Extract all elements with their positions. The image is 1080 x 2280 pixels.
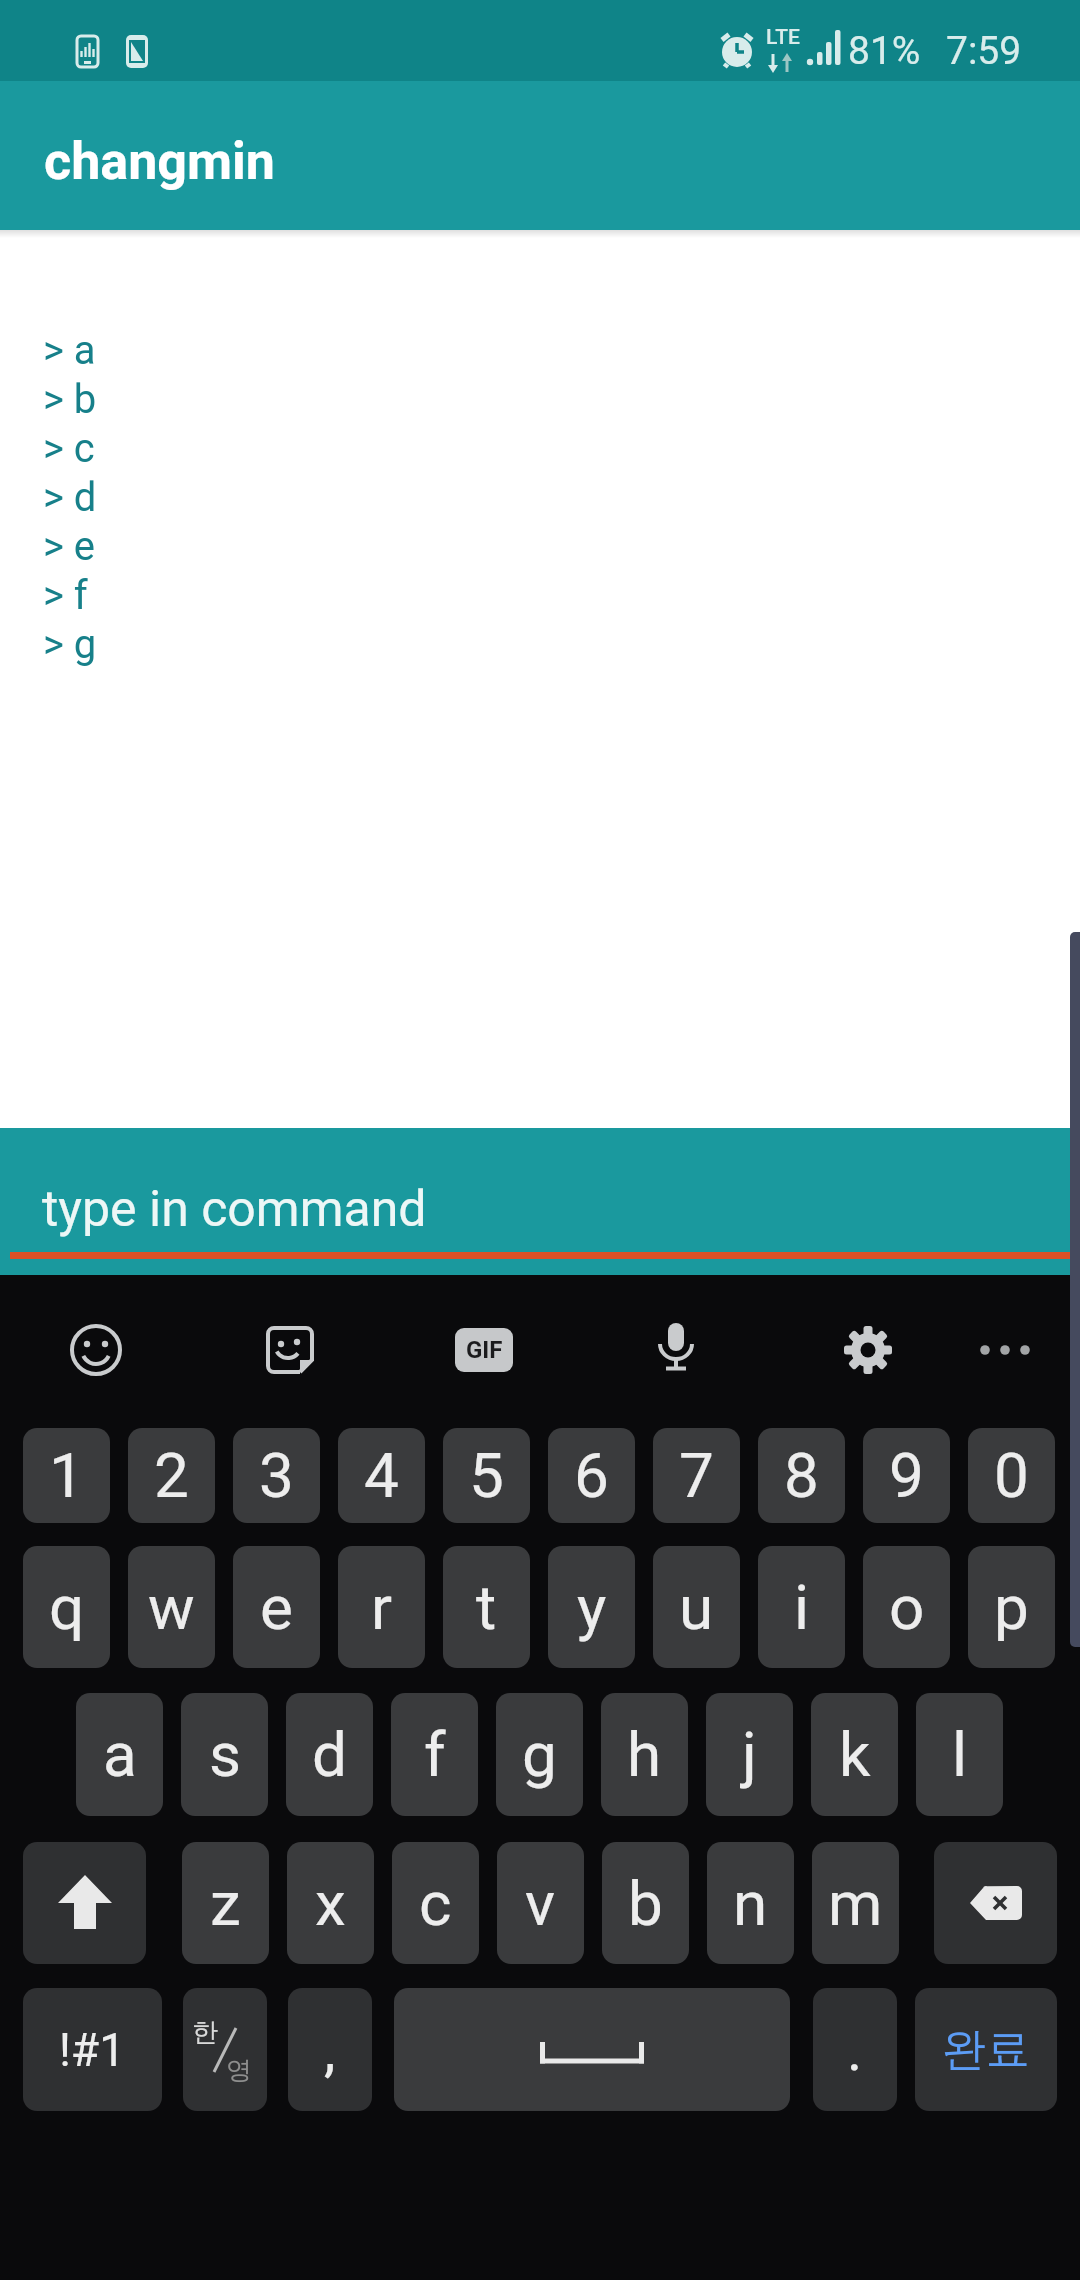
staticText: i xyxy=(794,1571,810,1644)
button[interactable] xyxy=(394,1988,790,2111)
staticText: 한 xyxy=(192,2016,218,2049)
staticText: 7 xyxy=(679,1439,714,1512)
button[interactable]: w xyxy=(128,1546,215,1668)
staticText: GIF xyxy=(466,1336,503,1364)
staticText: m xyxy=(828,1867,883,1940)
button[interactable]: m xyxy=(812,1842,899,1964)
button[interactable]: i xyxy=(758,1546,845,1668)
button[interactable]: 3 xyxy=(233,1428,320,1523)
staticText: h xyxy=(627,1718,662,1791)
staticText: w xyxy=(148,1571,195,1644)
staticText: 1 xyxy=(49,1439,84,1512)
button[interactable]: 5 xyxy=(443,1428,530,1523)
staticText: u xyxy=(679,1571,714,1644)
button[interactable]: e xyxy=(233,1546,320,1668)
staticText: 4 xyxy=(364,1439,399,1512)
button[interactable] xyxy=(70,1324,122,1376)
button[interactable]: 한 xyxy=(183,1988,267,2111)
staticText: changmin xyxy=(44,131,275,192)
button[interactable]: v xyxy=(497,1842,584,1964)
button[interactable]: 8 xyxy=(758,1428,845,1523)
button[interactable]: a xyxy=(76,1693,163,1816)
button[interactable] xyxy=(650,1321,702,1379)
staticText: n xyxy=(733,1867,768,1940)
staticText: s xyxy=(209,1718,241,1791)
button[interactable]: 2 xyxy=(128,1428,215,1523)
staticText: !#1 xyxy=(59,2023,126,2077)
button[interactable]: 4 xyxy=(338,1428,425,1523)
staticText: p xyxy=(994,1571,1029,1644)
button[interactable] xyxy=(264,1324,316,1376)
staticText: 2 xyxy=(154,1439,189,1512)
staticText: e xyxy=(260,1571,293,1644)
button[interactable]: r xyxy=(338,1546,425,1668)
button[interactable]: s xyxy=(181,1693,268,1816)
staticText: y xyxy=(577,1571,607,1644)
button[interactable]: n xyxy=(707,1842,794,1964)
staticText: d xyxy=(312,1718,347,1791)
staticText: t xyxy=(476,1571,497,1644)
button[interactable]: type in command xyxy=(0,1128,1080,1275)
staticText: o xyxy=(889,1571,925,1644)
button[interactable]: k xyxy=(811,1693,898,1816)
button[interactable]: f xyxy=(391,1693,478,1816)
staticText: 7:59 xyxy=(946,28,1022,74)
button[interactable]: . xyxy=(813,1988,897,2111)
staticText: . xyxy=(847,2016,863,2084)
staticText: q xyxy=(49,1571,85,1644)
button[interactable]: g xyxy=(496,1693,583,1816)
staticText: 5 xyxy=(469,1439,504,1512)
staticText: v xyxy=(525,1867,556,1940)
staticText: l xyxy=(952,1718,968,1791)
button[interactable]: l xyxy=(916,1693,1003,1816)
button[interactable]: c xyxy=(392,1842,479,1964)
staticText: , xyxy=(324,2016,336,2084)
button[interactable]: z xyxy=(182,1842,269,1964)
button[interactable]: 7 xyxy=(653,1428,740,1523)
button[interactable]: x xyxy=(287,1842,374,1964)
staticText: z xyxy=(210,1867,241,1940)
button[interactable]: 1 xyxy=(23,1428,110,1523)
button[interactable]: 9 xyxy=(863,1428,950,1523)
button[interactable]: j xyxy=(706,1693,793,1816)
staticText: 6 xyxy=(574,1439,609,1512)
button[interactable]: b xyxy=(602,1842,689,1964)
staticText: 0 xyxy=(994,1439,1029,1512)
staticText: r xyxy=(371,1571,393,1644)
button[interactable]: GIF xyxy=(455,1328,513,1372)
staticText: x xyxy=(315,1867,346,1940)
button[interactable] xyxy=(842,1324,894,1376)
staticText: c xyxy=(419,1867,452,1940)
button[interactable]: !#1 xyxy=(23,1988,162,2111)
staticText: > a > b > c > d > e > f > g xyxy=(43,327,97,668)
staticText: 9 xyxy=(889,1439,924,1512)
staticText: 영 xyxy=(226,2054,252,2087)
button[interactable]: u xyxy=(653,1546,740,1668)
button[interactable]: y xyxy=(548,1546,635,1668)
staticText: g xyxy=(522,1718,557,1791)
staticText: type in command xyxy=(42,1180,427,1239)
staticText: a xyxy=(103,1718,137,1791)
button[interactable] xyxy=(23,1842,146,1964)
staticText: k xyxy=(839,1718,871,1791)
button[interactable]: , xyxy=(288,1988,372,2111)
staticText: 3 xyxy=(259,1439,294,1512)
button[interactable]: p xyxy=(968,1546,1055,1668)
button[interactable]: 6 xyxy=(548,1428,635,1523)
staticText: f xyxy=(424,1718,446,1791)
staticText: LTE xyxy=(766,25,800,50)
staticText: 8 xyxy=(784,1439,819,1512)
staticText: j xyxy=(742,1718,757,1791)
staticText: 완료 xyxy=(942,2022,1030,2077)
button[interactable]: h xyxy=(601,1693,688,1816)
button[interactable]: 0 xyxy=(968,1428,1055,1523)
button[interactable] xyxy=(934,1842,1057,1964)
button[interactable]: q xyxy=(23,1546,110,1668)
button[interactable]: d xyxy=(286,1693,373,1816)
staticText: 81% xyxy=(848,28,921,74)
button[interactable]: o xyxy=(863,1546,950,1668)
staticText: b xyxy=(628,1867,663,1940)
button[interactable]: 완료 xyxy=(915,1988,1057,2111)
button[interactable] xyxy=(978,1343,1032,1357)
button[interactable]: t xyxy=(443,1546,530,1668)
